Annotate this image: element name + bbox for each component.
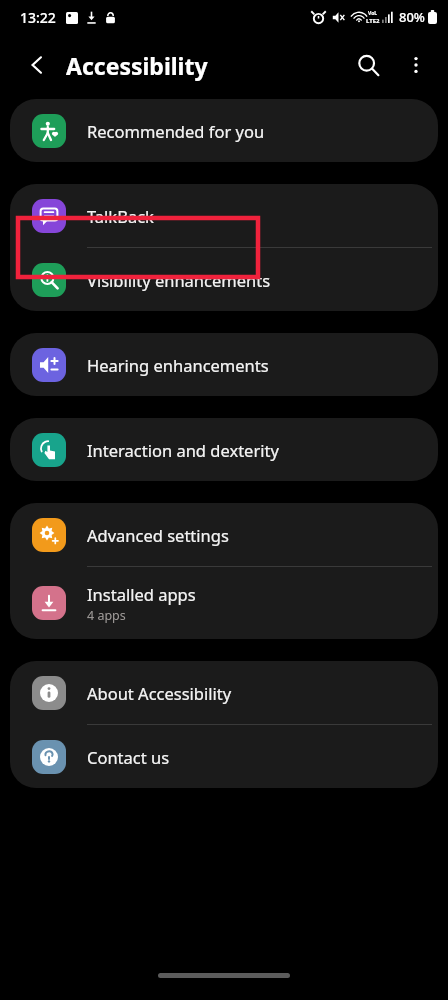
staticText: 80% (399, 8, 425, 26)
staticText: Visibility enhancements (87, 269, 271, 291)
button[interactable]: Back (14, 42, 60, 88)
button[interactable]: Search (344, 41, 392, 89)
button[interactable]: Recommended for you (10, 99, 438, 162)
staticText: Hearing enhancements (87, 354, 269, 376)
button[interactable]: Visibility enhancements (10, 248, 438, 311)
button[interactable]: Contact us (10, 725, 438, 788)
staticText: VoL (368, 10, 378, 17)
staticText: Recommended for you (87, 120, 265, 142)
staticText: 4 apps (87, 607, 126, 624)
staticText: Interaction and dexterity (87, 439, 279, 461)
button[interactable]: TalkBack (10, 184, 438, 247)
staticText: Contact us (87, 746, 170, 768)
button[interactable]: Hearing enhancements (10, 333, 438, 396)
staticText: TalkBack (87, 205, 154, 227)
button[interactable]: Interaction and dexterity (10, 418, 438, 481)
staticText: About Accessibility (87, 682, 232, 704)
staticText: Installed apps (87, 583, 196, 605)
staticText: LTE2 (366, 17, 380, 25)
staticText: Accessibility (66, 50, 208, 81)
staticText: 13:22 (20, 8, 56, 27)
button[interactable]: About Accessibility (10, 661, 438, 724)
button[interactable]: Installed apps (10, 567, 438, 639)
button[interactable]: Advanced settings (10, 503, 438, 566)
button[interactable]: More options (392, 41, 440, 89)
staticText: Advanced settings (87, 524, 229, 546)
